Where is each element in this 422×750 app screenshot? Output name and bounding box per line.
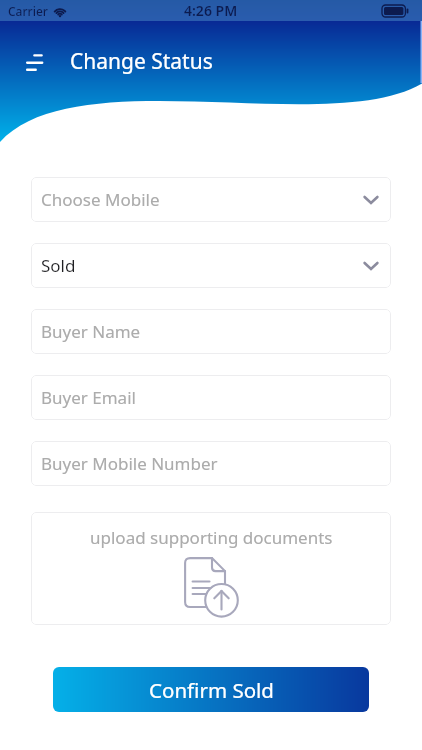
staticText: Choose Mobile — [41, 188, 160, 211]
staticText: Change Status — [70, 47, 213, 76]
button[interactable]: Sold — [31, 243, 391, 288]
staticText: Confirm Sold — [149, 676, 274, 704]
staticText: Buyer Name — [41, 320, 141, 343]
button[interactable]: Buyer Email — [31, 375, 391, 420]
button[interactable]: upload supporting documents — [31, 512, 391, 625]
staticText: Buyer Mobile Number — [41, 452, 218, 475]
button[interactable]: Choose Mobile — [31, 177, 391, 222]
staticText: Sold — [41, 254, 76, 277]
button[interactable]: Buyer Name — [31, 309, 391, 354]
staticText: Carrier — [8, 3, 48, 19]
button[interactable]: Confirm Sold — [53, 667, 369, 712]
button[interactable]: Buyer Mobile Number — [31, 441, 391, 486]
staticText: Buyer Email — [41, 386, 136, 409]
staticText: 4:26 PM — [184, 1, 238, 20]
staticText: upload supporting documents — [90, 526, 333, 549]
button[interactable]: Menu — [14, 44, 50, 80]
